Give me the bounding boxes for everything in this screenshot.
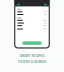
staticText: FILTERS & SEARCH [18,60,46,64]
button[interactable]: Reset [44,4,47,5]
staticText: SMART RECIPES [19,54,44,58]
button[interactable]: Show results [22,41,42,45]
button[interactable]: Cancel [17,4,20,5]
